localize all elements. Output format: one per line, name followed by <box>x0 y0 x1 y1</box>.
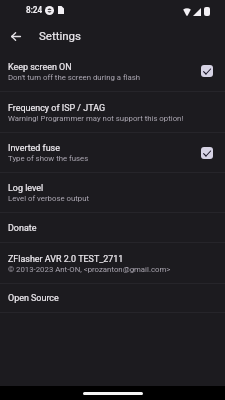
staticText: ZFlasher AVR 2.0 TEST_2711 <box>8 254 124 264</box>
button[interactable]: Toggle setting <box>201 65 213 77</box>
button[interactable]: Log level <box>0 173 225 212</box>
button[interactable]: Open Source <box>0 284 225 312</box>
staticText: Warning! Programmer may not support this… <box>8 114 184 123</box>
staticText: Donate <box>8 223 37 233</box>
staticText: 8:24 <box>26 5 43 15</box>
button[interactable]: ZFlasher AVR 2.0 TEST_2711 <box>0 243 225 283</box>
staticText: Level of verbose output <box>8 194 90 203</box>
button[interactable]: Inverted fuse <box>0 133 225 172</box>
staticText: Settings <box>39 29 81 42</box>
staticText: Inverted fuse <box>8 143 60 153</box>
button[interactable]: Donate <box>0 213 225 242</box>
staticText: Log level <box>8 183 44 193</box>
button[interactable]: Frequency of ISP / JTAG <box>0 92 225 132</box>
button[interactable]: Toggle setting <box>201 147 213 159</box>
staticText: Type of show the fuses <box>8 154 89 163</box>
staticText: Don't turn off the screen during a flash <box>8 73 140 82</box>
staticText: Keep screen ON <box>8 62 72 72</box>
button[interactable]: Keep screen ON <box>0 51 225 91</box>
button[interactable]: Back <box>4 24 28 48</box>
staticText: © 2013-2023 Ant-ON, <prozanton@gmail.com… <box>8 265 171 274</box>
staticText: Open Source <box>8 293 59 303</box>
staticText: Frequency of ISP / JTAG <box>8 103 106 113</box>
